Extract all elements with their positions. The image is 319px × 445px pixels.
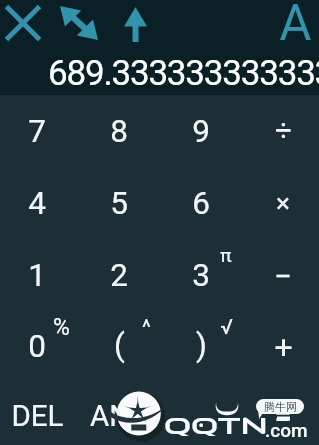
staticText: 2 xyxy=(110,257,128,294)
staticText: √ xyxy=(220,315,233,340)
staticText: .com xyxy=(265,419,308,441)
staticText: % xyxy=(53,314,70,341)
button[interactable] xyxy=(78,167,160,238)
button[interactable] xyxy=(78,96,160,167)
staticText: × xyxy=(276,188,290,218)
staticText: 8 xyxy=(110,113,128,150)
staticText: 4 xyxy=(28,185,46,222)
button[interactable] xyxy=(160,239,242,310)
staticText: ANS xyxy=(90,399,148,434)
staticText: − xyxy=(274,258,292,294)
button[interactable] xyxy=(0,167,78,238)
button[interactable] xyxy=(0,311,78,382)
staticText: . xyxy=(197,398,206,435)
button[interactable] xyxy=(160,96,242,167)
button[interactable] xyxy=(0,96,78,167)
staticText: 7 xyxy=(28,113,46,150)
staticText: + xyxy=(274,328,293,366)
staticText: 腾牛网 xyxy=(264,400,297,414)
staticText: ÷ xyxy=(275,114,292,148)
staticText: QQTN xyxy=(164,412,268,440)
staticText: A xyxy=(279,0,312,52)
button[interactable]: Equals xyxy=(242,380,319,445)
staticText: 9 xyxy=(192,113,210,150)
button[interactable]: Close xyxy=(0,0,46,46)
staticText: 6 xyxy=(192,185,210,222)
button[interactable]: Minus xyxy=(242,239,319,310)
button[interactable] xyxy=(78,311,160,382)
button[interactable]: Move up xyxy=(112,1,158,47)
staticText: ) xyxy=(196,327,207,364)
staticText: ^ xyxy=(142,315,151,340)
button[interactable]: Multiply xyxy=(242,167,319,238)
staticText: ( xyxy=(114,327,125,364)
button[interactable] xyxy=(0,239,78,310)
button[interactable]: Resize xyxy=(56,0,102,45)
button[interactable] xyxy=(160,311,242,382)
staticText: 3 xyxy=(192,257,210,294)
button[interactable] xyxy=(78,239,160,310)
button[interactable] xyxy=(78,380,160,445)
button[interactable] xyxy=(160,380,242,445)
staticText: = xyxy=(274,398,292,435)
staticText: π xyxy=(220,244,232,266)
staticText: 689.333333333333333 xyxy=(48,53,319,94)
button[interactable] xyxy=(160,167,242,238)
staticText: 5 xyxy=(110,185,128,222)
staticText: DEL xyxy=(11,399,64,434)
button[interactable]: Alphabet keys xyxy=(272,0,318,46)
button[interactable]: Divide xyxy=(242,96,319,167)
staticText: 1 xyxy=(28,257,46,294)
button[interactable]: Plus xyxy=(242,311,319,382)
staticText: 0 xyxy=(28,328,46,365)
button[interactable] xyxy=(0,380,78,445)
